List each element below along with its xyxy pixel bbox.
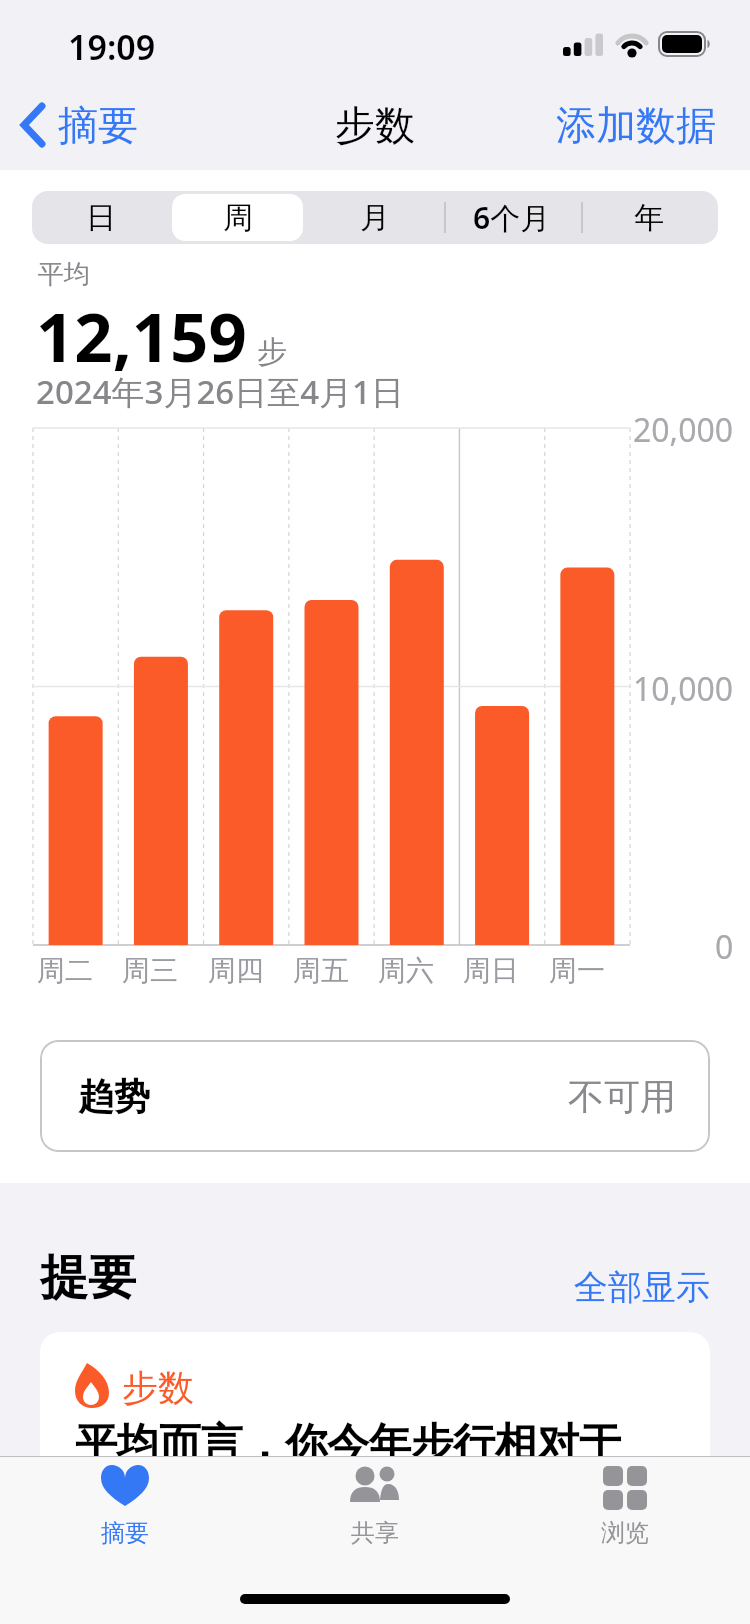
- button[interactable]: 步数: [40, 1332, 710, 1624]
- button[interactable]: 摘要: [55, 1464, 195, 1564]
- staticText: 摘要: [58, 100, 138, 150]
- staticText: 19:09: [68, 24, 156, 70]
- staticText: 共享: [351, 1518, 399, 1548]
- staticText: 步: [257, 333, 287, 371]
- button[interactable]: 年: [580, 191, 717, 244]
- button[interactable]: 月: [306, 191, 443, 244]
- staticText: 周一: [549, 953, 605, 988]
- staticText: 平均: [38, 258, 90, 291]
- staticText: 不可用: [568, 1074, 676, 1119]
- button[interactable]: 6个月: [443, 191, 580, 244]
- button[interactable]: 日: [32, 191, 169, 244]
- staticText: 周二: [37, 953, 93, 988]
- button[interactable]: 趋势: [40, 1040, 710, 1152]
- staticText: 添加数据: [556, 100, 716, 150]
- staticText: 周五: [293, 953, 349, 988]
- staticText: 提要: [40, 1248, 136, 1308]
- staticText: 2024年3月26日至4月1日: [36, 369, 404, 414]
- staticText: 周: [223, 199, 253, 237]
- button[interactable]: 摘要: [18, 98, 138, 152]
- button[interactable]: 共享: [305, 1464, 445, 1564]
- staticText: 周三: [122, 953, 178, 988]
- staticText: 平均而言，你今年步行相对于: [75, 1418, 621, 1471]
- button[interactable]: 周: [169, 191, 306, 244]
- staticText: 步数: [335, 100, 415, 150]
- button[interactable]: 添加数据: [490, 98, 716, 152]
- staticText: 12,159: [36, 290, 247, 381]
- staticText: 摘要: [101, 1518, 149, 1548]
- staticText: 步数: [122, 1365, 194, 1410]
- staticText: 20,000: [633, 408, 734, 448]
- staticText: 10,000: [633, 667, 734, 707]
- staticText: 月: [360, 199, 390, 237]
- staticText: 周四: [208, 953, 264, 988]
- staticText: 全部显示: [574, 1266, 710, 1309]
- staticText: 周日: [463, 953, 519, 988]
- button[interactable]: 全部显示: [450, 1262, 710, 1312]
- staticText: 周六: [378, 953, 434, 988]
- staticText: 0: [715, 925, 734, 965]
- button[interactable]: 浏览: [555, 1464, 695, 1564]
- staticText: 年: [634, 199, 664, 237]
- staticText: 趋势: [78, 1074, 150, 1119]
- staticText: 6个月: [473, 197, 551, 238]
- staticText: 日: [86, 199, 116, 237]
- staticText: 浏览: [601, 1518, 649, 1548]
